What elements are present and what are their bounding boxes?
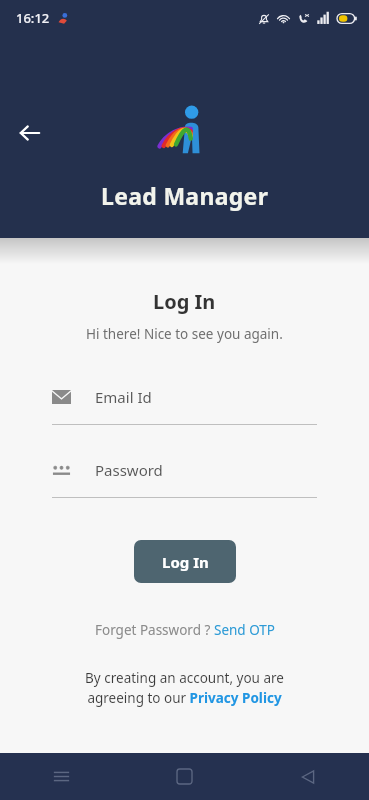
staticText: Log In <box>162 552 209 572</box>
staticText: 16:12 <box>16 9 50 27</box>
staticText: Forget Password ? <box>95 621 214 639</box>
staticText: Lead Manager <box>101 180 269 211</box>
staticText: Hi there! Nice to see you again. <box>86 325 283 343</box>
staticText: Password <box>95 460 163 480</box>
button[interactable]: Home <box>123 753 246 800</box>
button[interactable]: Password field <box>52 460 317 498</box>
button[interactable]: By creating an account, you are agreeing… <box>0 669 369 707</box>
button[interactable]: Email Id field <box>52 387 317 425</box>
button[interactable]: Recent apps <box>0 753 123 800</box>
button[interactable]: Forget Password ? <box>87 617 283 643</box>
button[interactable]: Log In <box>134 540 236 583</box>
button[interactable]: Back <box>12 115 48 151</box>
staticText: Log In <box>153 288 216 315</box>
staticText: Email Id <box>95 387 152 407</box>
button[interactable]: Back <box>246 753 369 800</box>
staticText: Send OTP <box>214 621 275 639</box>
